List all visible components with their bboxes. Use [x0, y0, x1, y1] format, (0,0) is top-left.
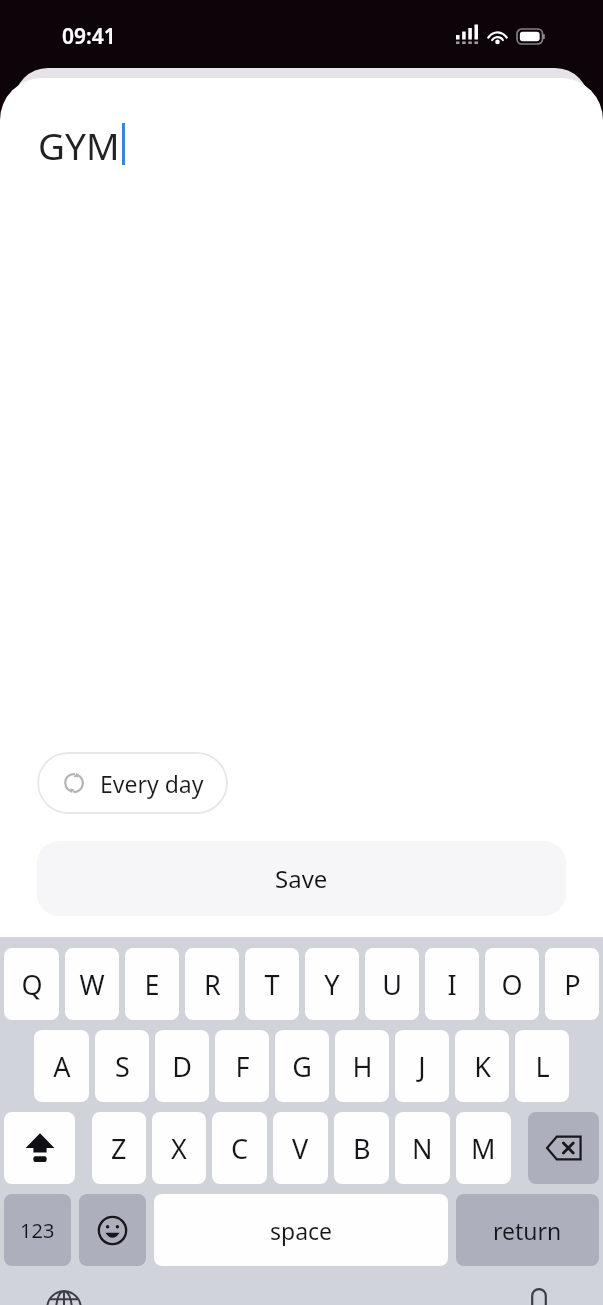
button[interactable]: G	[275, 1030, 329, 1102]
button[interactable]: H	[335, 1030, 389, 1102]
button[interactable]: R	[185, 948, 239, 1020]
button[interactable]: space	[154, 1194, 448, 1266]
staticText: G	[292, 1048, 312, 1085]
staticText: K	[474, 1048, 491, 1085]
staticText: A	[53, 1048, 71, 1085]
staticText: P	[564, 966, 581, 1003]
button[interactable]: N	[395, 1112, 450, 1184]
staticText: T	[264, 966, 280, 1003]
staticText: N	[412, 1130, 433, 1167]
button[interactable]: return	[456, 1194, 599, 1266]
button[interactable]: Emoji	[79, 1194, 146, 1266]
staticText: Y	[324, 966, 340, 1003]
button[interactable]: Z	[92, 1112, 146, 1184]
button[interactable]: T	[245, 948, 299, 1020]
staticText: 123	[20, 1217, 55, 1244]
button[interactable]: Backspace	[528, 1112, 599, 1184]
staticText: space	[270, 1215, 333, 1246]
staticText: D	[172, 1048, 192, 1085]
staticText: S	[115, 1048, 130, 1085]
button[interactable]: K	[455, 1030, 509, 1102]
staticText: X	[171, 1130, 187, 1167]
button[interactable]: X	[152, 1112, 206, 1184]
button[interactable]: I	[425, 948, 479, 1020]
staticText: O	[501, 966, 523, 1003]
button[interactable]: V	[273, 1112, 328, 1184]
staticText: C	[231, 1130, 249, 1167]
button[interactable]: Every day	[37, 752, 228, 814]
button[interactable]: E	[125, 948, 179, 1020]
staticText: return	[493, 1215, 562, 1246]
button[interactable]: A	[34, 1030, 89, 1102]
button[interactable]: C	[212, 1112, 267, 1184]
staticText: M	[471, 1130, 496, 1167]
button[interactable]: J	[395, 1030, 449, 1102]
button[interactable]: M	[456, 1112, 511, 1184]
button[interactable]: W	[65, 948, 119, 1020]
button[interactable]: Change keyboard language	[38, 1282, 90, 1305]
staticText: V	[292, 1130, 309, 1167]
staticText: E	[144, 966, 160, 1003]
staticText: I	[447, 966, 457, 1003]
staticText: Save	[275, 862, 328, 895]
staticText: H	[352, 1048, 373, 1085]
button[interactable]: U	[365, 948, 419, 1020]
button[interactable]: D	[155, 1030, 209, 1102]
button[interactable]: Y	[305, 948, 359, 1020]
staticText: W	[79, 966, 105, 1003]
button[interactable]: S	[95, 1030, 149, 1102]
button[interactable]: Q	[4, 948, 59, 1020]
button[interactable]: 123	[4, 1194, 71, 1266]
staticText: 09:41	[62, 22, 116, 51]
button[interactable]: Save	[37, 841, 566, 916]
button[interactable]: B	[334, 1112, 389, 1184]
button[interactable]: L	[515, 1030, 569, 1102]
staticText: L	[535, 1048, 550, 1085]
staticText: Every day	[100, 768, 204, 799]
button[interactable]: Shift	[4, 1112, 75, 1184]
staticText: F	[235, 1048, 250, 1085]
staticText: U	[382, 966, 402, 1003]
button[interactable]: O	[485, 948, 539, 1020]
staticText: Q	[21, 966, 43, 1003]
staticText: R	[204, 966, 221, 1003]
staticText: Z	[111, 1130, 127, 1167]
button[interactable]: F	[215, 1030, 269, 1102]
button[interactable]: P	[545, 948, 599, 1020]
staticText: J	[418, 1048, 426, 1085]
staticText: B	[353, 1130, 371, 1167]
staticText: GYM	[38, 120, 120, 168]
button[interactable]: Dictation	[513, 1282, 565, 1305]
